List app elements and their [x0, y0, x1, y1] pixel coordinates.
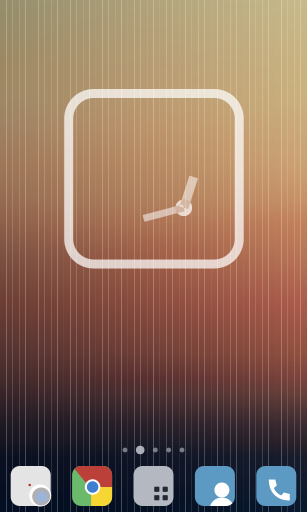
button[interactable]: All apps	[123, 466, 184, 506]
button[interactable]: Camera	[0, 466, 61, 506]
button[interactable]: Contacts	[184, 466, 246, 506]
button[interactable]: Chrome	[61, 466, 123, 506]
button[interactable]: Phone	[246, 466, 307, 506]
